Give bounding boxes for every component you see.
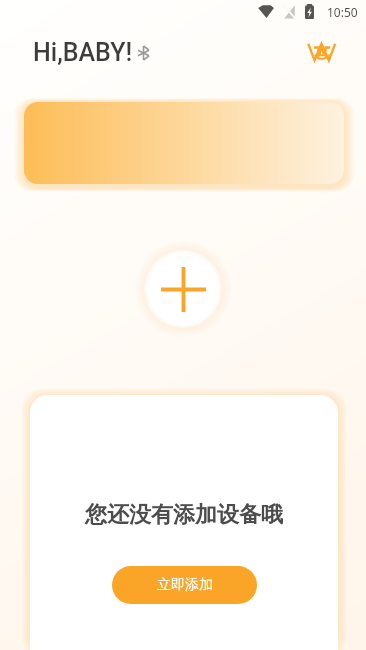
staticText: Hi,BABY!	[33, 38, 133, 67]
staticText: 立即添加	[157, 576, 213, 594]
button[interactable]: Promotion banner	[24, 102, 344, 184]
staticText: 您还没有添加设备哦	[85, 501, 283, 529]
button[interactable]: Add device	[148, 254, 219, 325]
button[interactable]: 立即添加	[112, 566, 257, 604]
staticText: 10:50	[327, 4, 358, 20]
button[interactable]: VIP membership	[308, 43, 336, 61]
